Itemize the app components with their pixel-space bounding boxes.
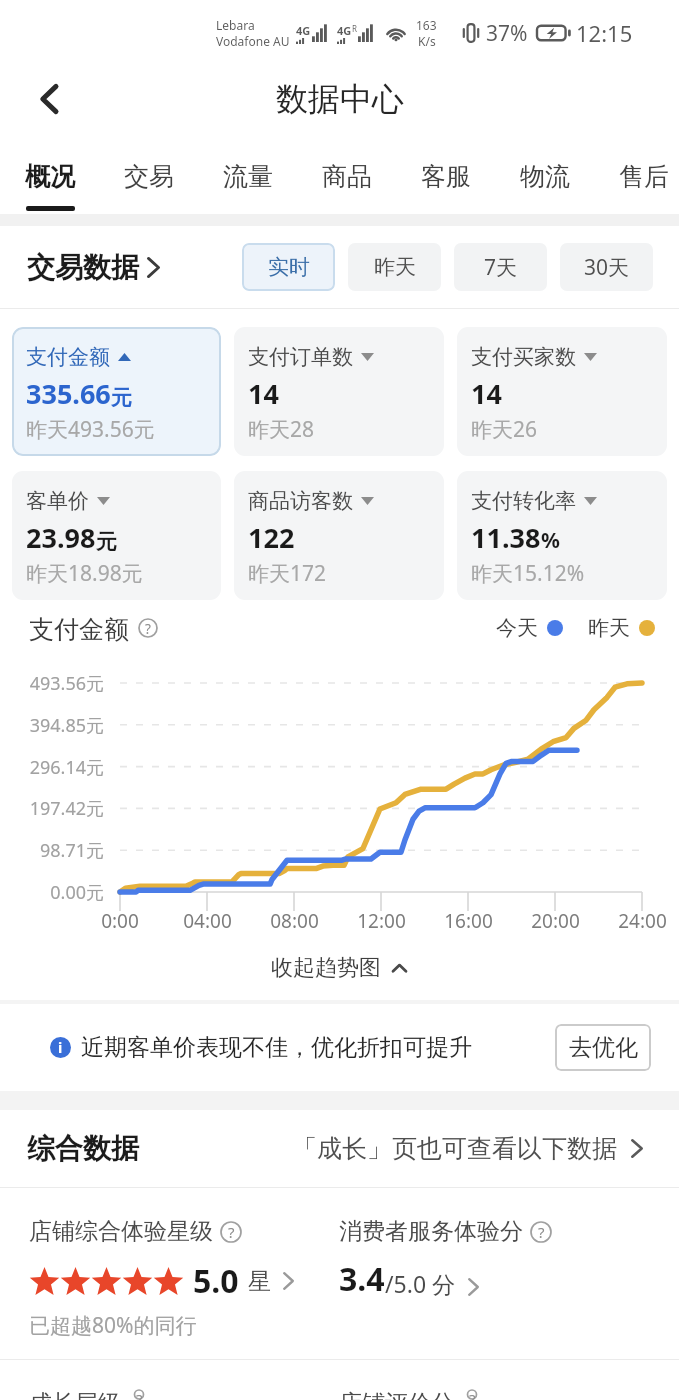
staticText: 昨天172 bbox=[248, 559, 327, 588]
button[interactable]: 7天 bbox=[454, 243, 547, 291]
staticText: 流量 bbox=[223, 161, 273, 192]
button[interactable]: 商品 bbox=[298, 135, 396, 214]
button[interactable]: 交易数据 bbox=[27, 250, 160, 285]
staticText: 14 bbox=[471, 375, 502, 412]
staticText: 支付转化率 bbox=[471, 488, 576, 514]
staticText: i bbox=[58, 1038, 63, 1057]
staticText: 成长层级 bbox=[29, 1389, 121, 1400]
staticText: Lebara bbox=[216, 17, 255, 33]
staticText: 493.56元 bbox=[29, 671, 104, 696]
staticText: 昨天26 bbox=[471, 415, 538, 444]
staticText: 3.4 bbox=[339, 1257, 385, 1301]
staticText: 昨天15.12% bbox=[471, 559, 585, 588]
staticText: 「成长」页也可查看以下数据 bbox=[292, 1133, 617, 1164]
staticText: 296.14元 bbox=[29, 755, 104, 780]
button[interactable]: 30天 bbox=[560, 243, 653, 291]
button[interactable]: 收起趋势图 bbox=[0, 936, 679, 1000]
staticText: 20:00 bbox=[531, 908, 580, 934]
staticText: 元 bbox=[96, 529, 117, 555]
staticText: 7天 bbox=[484, 253, 518, 282]
staticText: 394.85元 bbox=[29, 713, 104, 738]
button[interactable]: 店铺综合体验星级 bbox=[0, 1188, 339, 1359]
staticText: 数据中心 bbox=[276, 79, 404, 119]
staticText: 元 bbox=[111, 385, 132, 411]
button[interactable]: 支付订单数 bbox=[234, 327, 444, 456]
staticText: 收起趋势图 bbox=[271, 954, 381, 982]
button[interactable]: Back bbox=[22, 71, 78, 127]
staticText: 星 bbox=[248, 1267, 271, 1296]
button[interactable]: 支付金额 bbox=[12, 327, 221, 456]
staticText: 昨天 bbox=[374, 254, 416, 280]
staticText: ? bbox=[228, 1222, 235, 1242]
staticText: 去优化 bbox=[569, 1033, 638, 1062]
staticText: 16:00 bbox=[444, 908, 493, 934]
button[interactable]: 去优化 bbox=[555, 1024, 651, 1071]
staticText: 支付金额 bbox=[26, 344, 110, 370]
button[interactable]: 商品访客数 bbox=[234, 471, 444, 600]
staticText: 12:15 bbox=[576, 18, 633, 48]
button[interactable]: 交易 bbox=[100, 135, 198, 214]
staticText: 163 bbox=[416, 17, 437, 33]
staticText: 物流 bbox=[520, 161, 570, 192]
staticText: 客单价 bbox=[26, 488, 89, 514]
staticText: 23.98 bbox=[26, 519, 96, 556]
staticText: % bbox=[541, 526, 560, 555]
staticText: 98.71元 bbox=[39, 838, 104, 863]
staticText: 08:00 bbox=[270, 908, 319, 934]
button[interactable]: 流量 bbox=[199, 135, 297, 214]
staticText: 4G bbox=[337, 23, 352, 38]
staticText: 近期客单价表现不佳，优化折扣可提升 bbox=[81, 1033, 472, 1062]
staticText: 支付金额 bbox=[29, 614, 129, 642]
staticText: 37% bbox=[486, 19, 528, 48]
staticText: 昨天493.56元 bbox=[26, 415, 155, 444]
staticText: 商品 bbox=[322, 161, 372, 192]
staticText: /5.0 分 bbox=[385, 1268, 456, 1299]
staticText: 24:00 bbox=[618, 908, 667, 934]
button[interactable]: 昨天 bbox=[348, 243, 441, 291]
staticText: 30天 bbox=[584, 253, 630, 282]
button[interactable]: 消费者服务体验分 bbox=[339, 1188, 679, 1359]
staticText: 昨天 bbox=[588, 615, 630, 641]
staticText: 335.66 bbox=[26, 375, 111, 412]
staticText: 0.00元 bbox=[50, 880, 104, 905]
staticText: 11.38 bbox=[471, 519, 541, 556]
staticText: ? bbox=[145, 619, 151, 638]
button[interactable]: 客服 bbox=[397, 135, 495, 214]
staticText: 店铺评价分 bbox=[339, 1389, 454, 1400]
staticText: ? bbox=[538, 1222, 545, 1242]
staticText: 支付买家数 bbox=[471, 344, 576, 370]
staticText: 支付订单数 bbox=[248, 344, 353, 370]
staticText: ? bbox=[136, 1389, 143, 1400]
staticText: K/s bbox=[418, 33, 436, 49]
button[interactable]: 「成长」页也可查看以下数据 bbox=[292, 1133, 643, 1164]
staticText: 概况 bbox=[25, 161, 75, 192]
button[interactable]: 支付买家数 bbox=[457, 327, 667, 456]
staticText: 商品访客数 bbox=[248, 488, 353, 514]
button[interactable]: 客单价 bbox=[12, 471, 221, 600]
button[interactable]: 概况 bbox=[1, 135, 99, 214]
button[interactable]: 支付转化率 bbox=[457, 471, 667, 600]
staticText: 交易 bbox=[124, 161, 174, 192]
staticText: 已超越80%的同行 bbox=[29, 1311, 197, 1340]
staticText: 5.0 bbox=[193, 1259, 239, 1303]
button[interactable]: 售后 bbox=[595, 135, 679, 214]
staticText: 综合数据 bbox=[27, 1131, 139, 1166]
staticText: 昨天28 bbox=[248, 415, 315, 444]
staticText: 197.42元 bbox=[29, 796, 104, 821]
button[interactable]: 成长层级 bbox=[0, 1360, 339, 1400]
button[interactable]: 店铺评价分 bbox=[339, 1360, 679, 1400]
button[interactable]: 物流 bbox=[496, 135, 594, 214]
staticText: Vodafone AU bbox=[216, 33, 290, 49]
staticText: 今天 bbox=[496, 615, 538, 641]
staticText: 昨天18.98元 bbox=[26, 559, 143, 588]
staticText: 4G bbox=[296, 23, 311, 38]
staticText: 实时 bbox=[268, 254, 310, 280]
staticText: 客服 bbox=[421, 161, 471, 192]
staticText: 04:00 bbox=[183, 908, 232, 934]
staticText: 消费者服务体验分 bbox=[339, 1217, 523, 1246]
staticText: 14 bbox=[248, 375, 279, 412]
button[interactable]: 实时 bbox=[242, 243, 335, 291]
staticText: 0:00 bbox=[101, 908, 139, 934]
staticText: 售后 bbox=[619, 161, 669, 192]
staticText: R bbox=[352, 23, 357, 34]
